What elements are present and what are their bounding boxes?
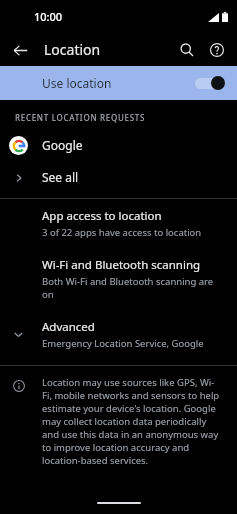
staticText: Advanced (42, 319, 95, 335)
button[interactable]: App access to location (0, 199, 237, 248)
button[interactable]: Wi-Fi and Bluetooth scanning (0, 248, 237, 310)
button[interactable]: See all (0, 162, 237, 192)
button[interactable]: Google (0, 128, 237, 162)
staticText: 3 of 22 apps have access to location (42, 226, 202, 239)
staticText: Emergency Location Service, Google Locat… (42, 337, 227, 350)
staticText: Location (44, 40, 101, 59)
button[interactable]: Back (6, 36, 34, 64)
staticText: App access to location (42, 208, 162, 224)
staticText: Both Wi-Fi and Bluetooth scanning are on (42, 275, 223, 301)
staticText: RECENT LOCATION REQUESTS (15, 112, 146, 123)
staticText: Location may use sources like GPS, Wi-Fi… (42, 376, 223, 467)
staticText: 10:00 (34, 9, 63, 24)
button[interactable]: Help (203, 36, 231, 64)
staticText: Google (42, 137, 83, 153)
button[interactable]: Search (173, 36, 201, 64)
staticText: See all (42, 169, 79, 185)
button[interactable]: Use location (0, 66, 237, 100)
staticText: Wi-Fi and Bluetooth scanning (42, 257, 201, 273)
staticText: Use location (42, 75, 195, 91)
button[interactable]: Advanced (0, 310, 237, 359)
